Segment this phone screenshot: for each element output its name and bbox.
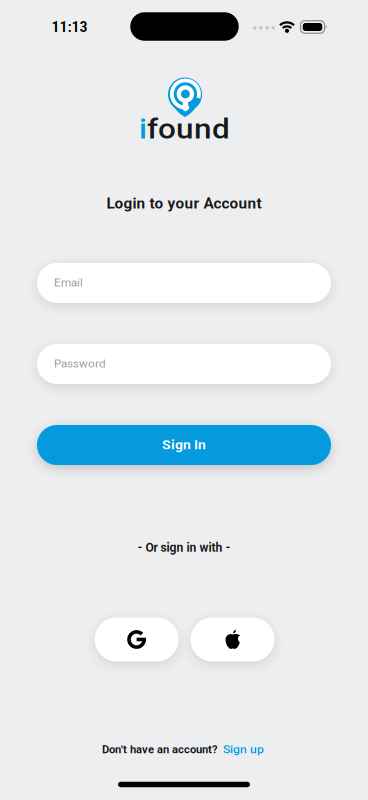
button[interactable]: Sign up bbox=[223, 742, 264, 757]
button[interactable]: Sign In bbox=[37, 425, 331, 465]
button[interactable]: Email bbox=[37, 263, 331, 303]
button[interactable]: Sign in with Google bbox=[95, 617, 179, 661]
staticText: - Or sign in with - bbox=[137, 540, 230, 555]
staticText: found bbox=[147, 111, 230, 147]
staticText: Sign In bbox=[162, 437, 206, 453]
staticText: Email bbox=[54, 276, 83, 290]
staticText: Don't have an account? bbox=[102, 743, 218, 756]
staticText: Login to your Account bbox=[106, 194, 261, 212]
staticText: i bbox=[139, 111, 147, 147]
button[interactable]: Password bbox=[37, 344, 331, 384]
staticText: Password bbox=[54, 357, 106, 371]
button[interactable]: Sign in with Apple bbox=[190, 617, 274, 661]
staticText: Sign up bbox=[223, 742, 264, 757]
staticText: 11:13 bbox=[51, 18, 87, 36]
